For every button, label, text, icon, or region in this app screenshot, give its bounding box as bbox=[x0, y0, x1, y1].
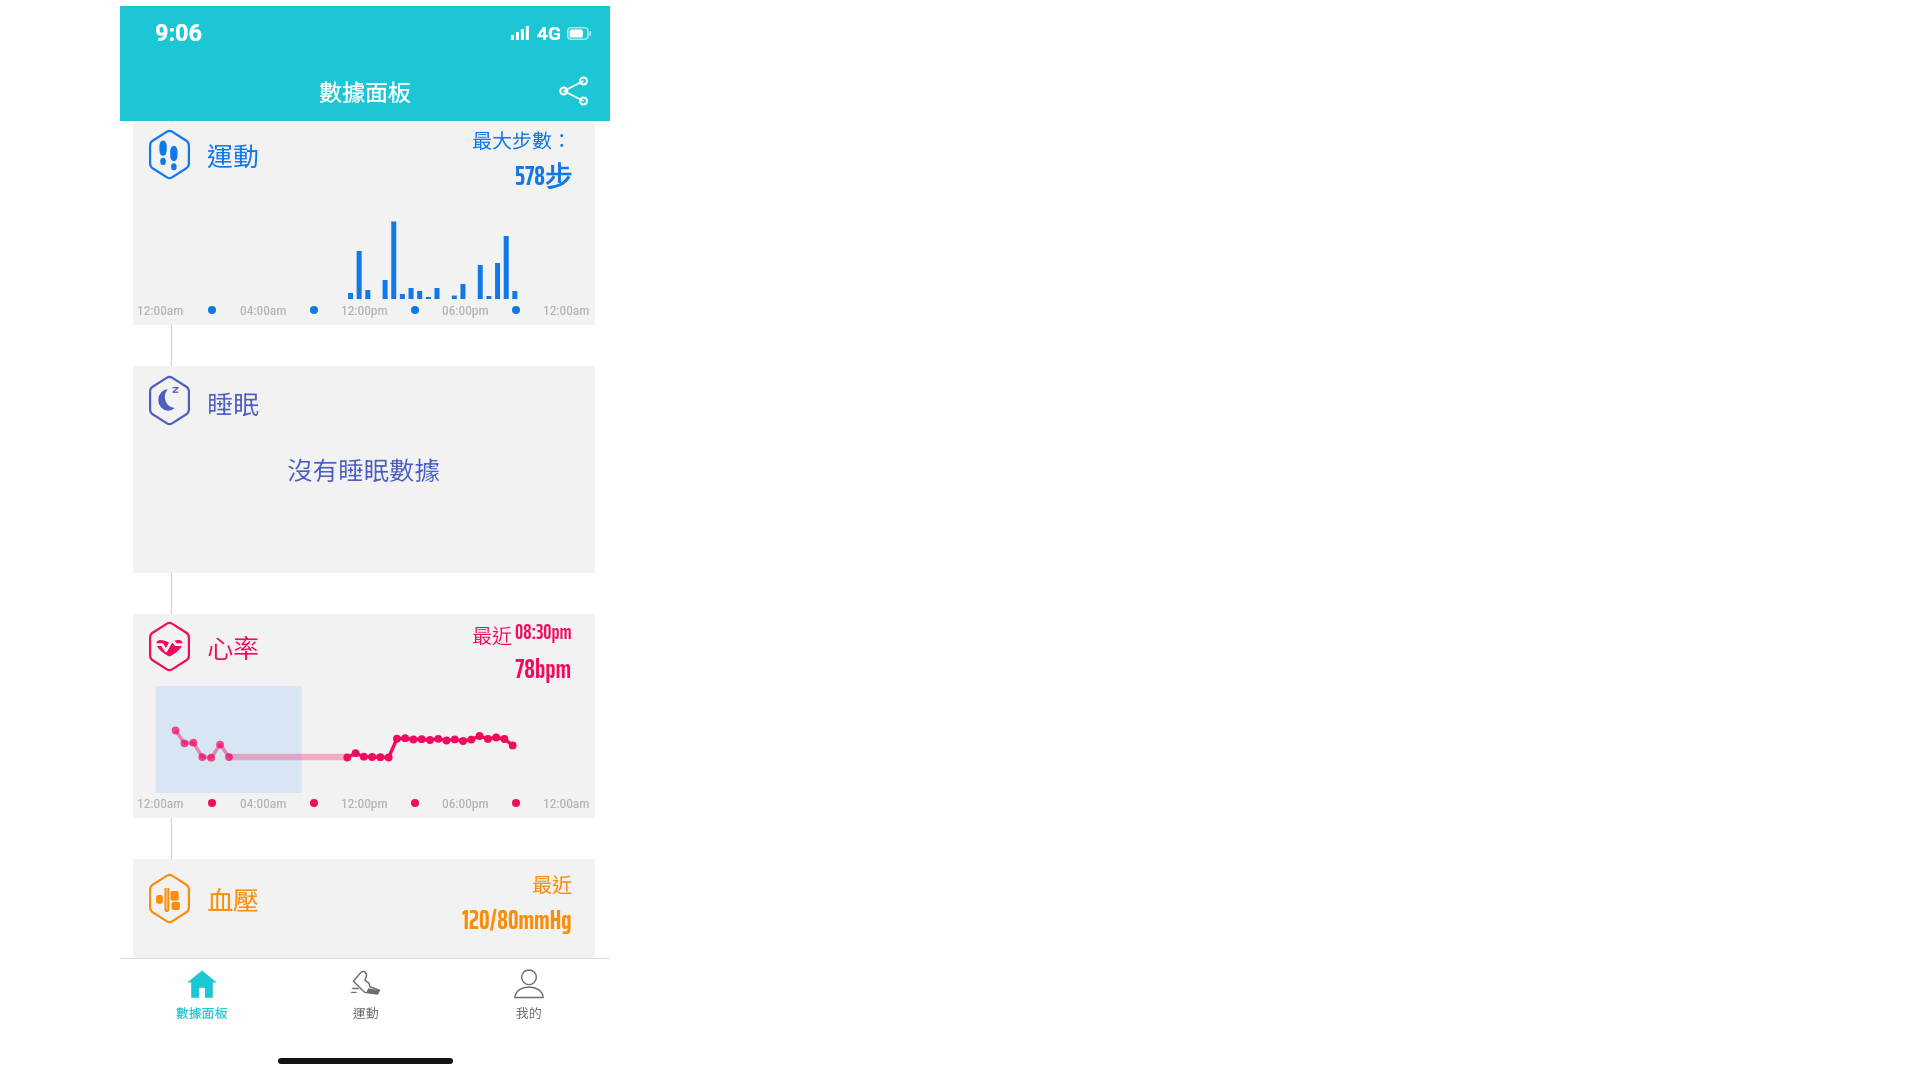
staticText: 運動 bbox=[353, 1003, 379, 1022]
staticText: 血壓 bbox=[207, 880, 260, 918]
staticText: 最近 bbox=[532, 869, 572, 898]
staticText: 4G bbox=[537, 22, 561, 44]
staticText: 睡眠 bbox=[207, 384, 260, 422]
staticText: 12:00am bbox=[543, 302, 590, 318]
staticText: 我的 bbox=[516, 1003, 542, 1022]
staticText: 08:30pm bbox=[515, 616, 572, 648]
staticText: 最近 bbox=[472, 620, 512, 649]
staticText: 12:00pm bbox=[341, 302, 388, 318]
button[interactable]: 數據面板 bbox=[120, 970, 284, 1022]
staticText: 04:00am bbox=[240, 795, 287, 811]
staticText: 最大步數： bbox=[472, 125, 572, 154]
button[interactable]: 運動 bbox=[133, 122, 595, 325]
button[interactable]: 睡眠 bbox=[133, 366, 595, 573]
staticText: 運動 bbox=[207, 136, 260, 174]
staticText: 04:00am bbox=[240, 302, 287, 318]
staticText: 12:00am bbox=[137, 795, 184, 811]
staticText: 數據面板 bbox=[319, 74, 411, 107]
staticText: 12:00pm bbox=[341, 795, 388, 811]
button[interactable]: 心率 bbox=[133, 614, 595, 818]
staticText: 120/80mmHg bbox=[462, 899, 572, 941]
staticText: 9:06 bbox=[155, 19, 203, 47]
staticText: 12:00am bbox=[543, 795, 590, 811]
staticText: 78bpm bbox=[515, 648, 572, 690]
staticText: 數據面板 bbox=[176, 1003, 228, 1022]
button[interactable]: 我的 bbox=[447, 970, 610, 1022]
staticText: 578步 bbox=[515, 155, 572, 197]
staticText: 06:00pm bbox=[442, 795, 489, 811]
button[interactable]: 運動 bbox=[284, 970, 447, 1022]
staticText: 沒有睡眠數據 bbox=[287, 450, 441, 487]
staticText: 心率 bbox=[207, 628, 260, 666]
staticText: 12:00am bbox=[137, 302, 184, 318]
staticText: 06:00pm bbox=[442, 302, 489, 318]
button[interactable]: 血壓 bbox=[133, 859, 595, 958]
button[interactable]: Share bbox=[552, 69, 596, 113]
